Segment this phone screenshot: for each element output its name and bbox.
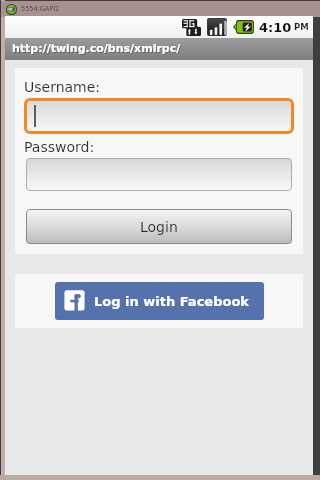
staticText: PM bbox=[294, 22, 309, 32]
button[interactable]: Log in with Facebook bbox=[55, 282, 264, 320]
other: Signal strength bbox=[207, 18, 227, 36]
button[interactable]: Login bbox=[26, 209, 292, 244]
staticText: 5554:GAPI2 bbox=[21, 5, 60, 13]
other: Emulator icon bbox=[6, 4, 17, 15]
staticText: Username: bbox=[24, 79, 101, 95]
button[interactable] bbox=[26, 158, 292, 191]
other: Battery charging bbox=[233, 20, 254, 34]
staticText: Login bbox=[140, 219, 178, 235]
other: 3G data bbox=[182, 19, 201, 36]
staticText: 4:10 bbox=[259, 20, 292, 35]
staticText: http://twing.co/bns/xmlrpc/ bbox=[12, 42, 181, 55]
staticText: http://twing.co/bns/xmlrpc/ bbox=[13, 43, 182, 56]
staticText: Password: bbox=[24, 139, 95, 155]
button[interactable]: http://twing.co/bns/xmlrpc/ bbox=[5, 38, 313, 60]
button[interactable] bbox=[27, 101, 291, 131]
staticText: Log in with Facebook bbox=[94, 294, 249, 309]
